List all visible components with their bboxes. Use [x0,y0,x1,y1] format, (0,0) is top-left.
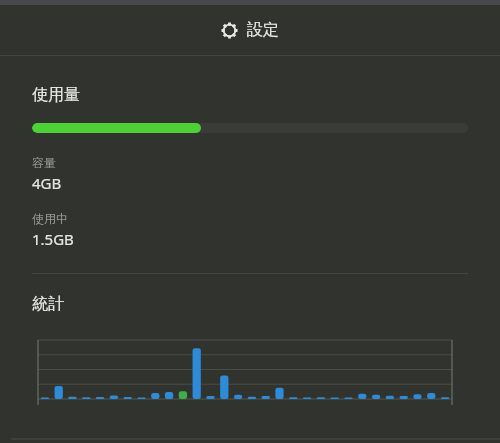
staticText: 1.5GB [32,229,74,249]
staticText: 設定 [247,20,279,40]
other: Settings [221,22,238,39]
button[interactable]: Settings [215,16,285,44]
staticText: 容量 [32,155,56,170]
staticText: 使用量 [32,85,80,105]
staticText: 4GB [32,173,62,193]
staticText: 統計 [32,294,64,314]
staticText: 使用中 [32,211,68,226]
button[interactable] [0,332,500,442]
